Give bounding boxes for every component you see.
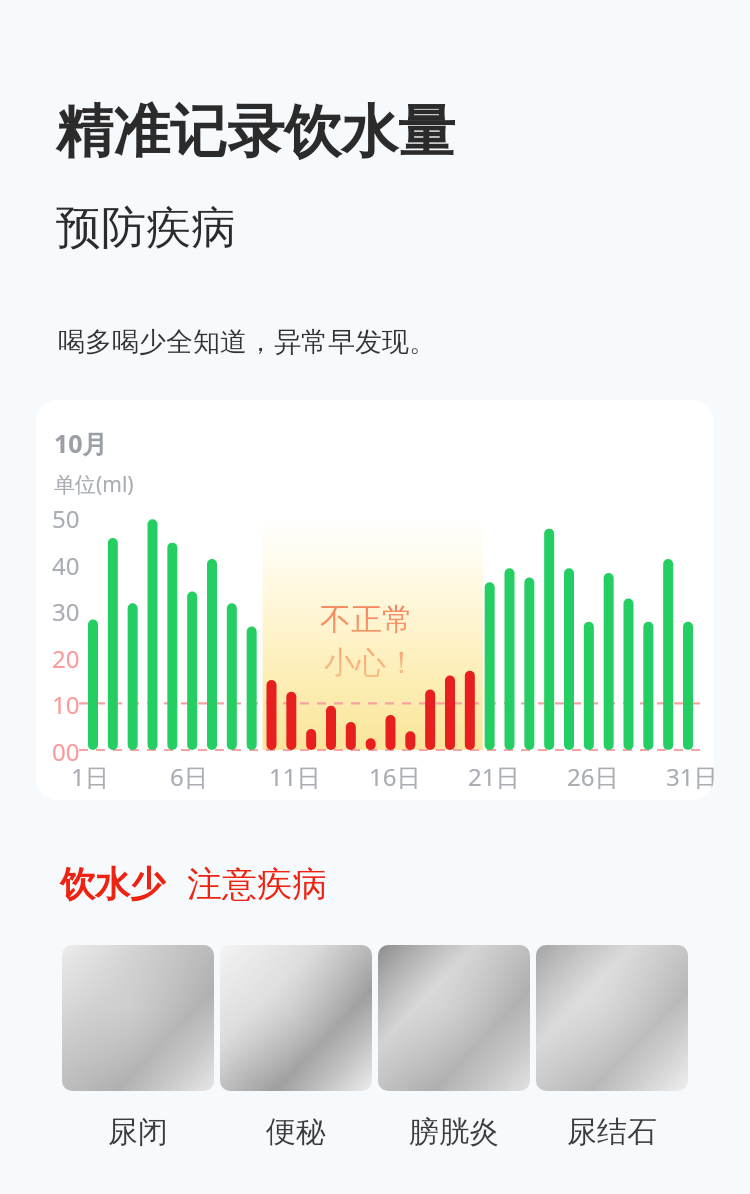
button[interactable]: 尿结石 (536, 945, 688, 1151)
staticText: 26日 (567, 760, 619, 793)
staticText: 16日 (369, 760, 421, 793)
staticText: 膀胱炎 (409, 1113, 499, 1151)
staticText: 注意疾病 (187, 862, 327, 906)
staticText: 尿结石 (567, 1113, 657, 1151)
staticText: 精准记录饮水量 (56, 96, 455, 168)
staticText: 10月 (54, 426, 108, 460)
staticText: 11日 (269, 760, 321, 793)
staticText: 喝多喝少全知道，异常早发现。 (58, 325, 436, 359)
other: 尿结石 (536, 945, 688, 1091)
staticText: 尿闭 (108, 1113, 168, 1151)
staticText: 21日 (468, 760, 520, 793)
staticText: 预防疾病 (56, 200, 236, 257)
staticText: 20 (52, 642, 80, 675)
button[interactable]: 便秘 (220, 945, 372, 1151)
staticText: 40 (52, 549, 80, 582)
staticText: 小心！ (324, 643, 417, 682)
staticText: 单位(ml) (54, 470, 134, 499)
staticText: 50 (52, 502, 80, 535)
staticText: 00 (52, 735, 80, 768)
other: 便秘 (220, 945, 372, 1091)
staticText: 10 (52, 688, 80, 721)
other: 膀胱炎 (378, 945, 530, 1091)
staticText: 31日 (666, 760, 714, 793)
staticText: 饮水少 (60, 862, 165, 906)
staticText: 6日 (170, 760, 208, 793)
staticText: 便秘 (266, 1113, 326, 1151)
staticText: 30 (52, 595, 80, 628)
button[interactable]: 膀胱炎 (378, 945, 530, 1151)
button[interactable]: 尿闭 (62, 945, 214, 1151)
staticText: 不正常 (320, 600, 413, 639)
staticText: 1日 (71, 760, 109, 793)
button[interactable]: 10月 (36, 400, 714, 800)
other: 尿闭 (62, 945, 214, 1091)
